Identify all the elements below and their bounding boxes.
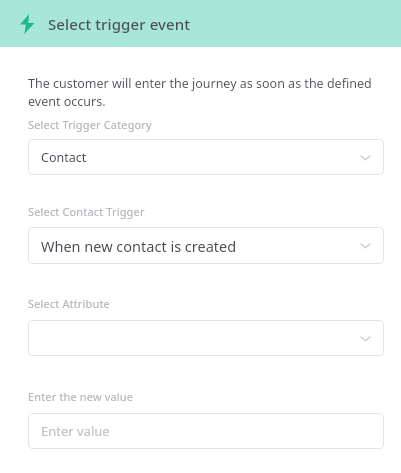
- staticText: Contact: [41, 149, 87, 166]
- staticText: Select Attribute: [28, 296, 110, 311]
- staticText: Select trigger event: [48, 14, 191, 34]
- button[interactable]: Trigger: [0, 0, 401, 47]
- staticText: Enter the new value: [28, 389, 134, 404]
- staticText: The customer will enter the journey as s…: [28, 75, 372, 110]
- staticText: When new contact is created: [41, 236, 237, 256]
- staticText: Enter value: [41, 422, 110, 440]
- staticText: Select Trigger Category: [28, 117, 152, 132]
- button[interactable]: Dropdown: [28, 139, 384, 175]
- button[interactable]: Enter value: [28, 413, 384, 449]
- button[interactable]: Dropdown: [28, 320, 384, 356]
- other: Trigger: [16, 13, 38, 35]
- staticText: Select Contact Trigger: [28, 204, 145, 219]
- button[interactable]: Dropdown: [28, 227, 384, 264]
